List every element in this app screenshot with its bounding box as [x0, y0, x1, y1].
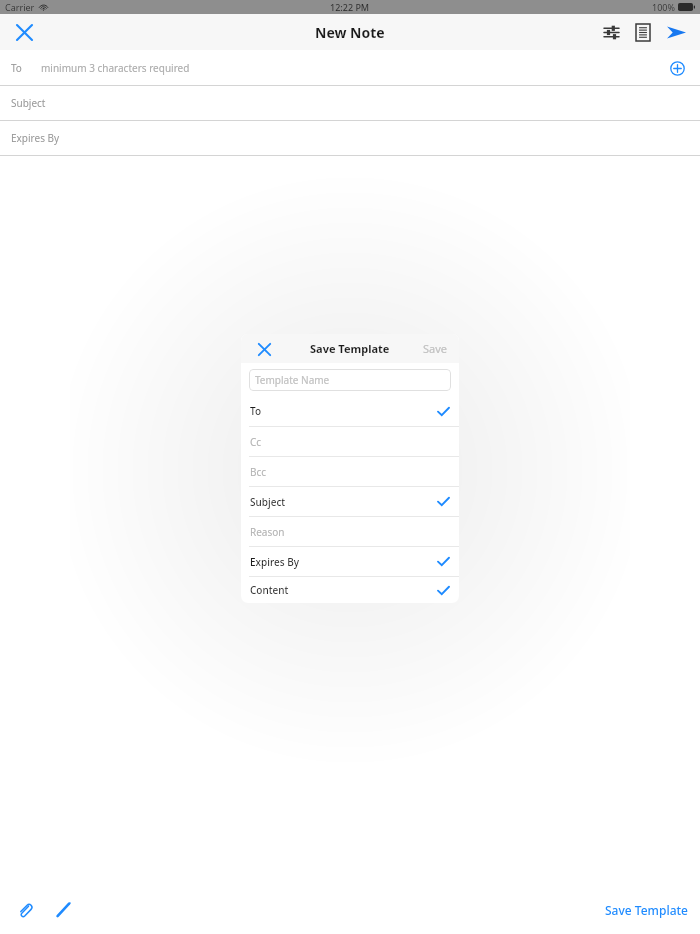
staticText: Expires By — [250, 555, 299, 569]
button[interactable]: Expires By — [0, 121, 700, 155]
staticText: minimum 3 characters required — [41, 61, 190, 75]
button[interactable]: Save Template — [599, 896, 694, 924]
staticText: To — [250, 404, 262, 418]
staticText: To — [11, 61, 22, 75]
button[interactable]: Attach — [10, 895, 40, 925]
staticText: 100% — [652, 1, 675, 13]
staticText: Bcc — [250, 465, 267, 479]
button[interactable]: Subject — [0, 86, 700, 120]
button[interactable]: Save — [423, 341, 448, 356]
staticText: New Note — [315, 23, 385, 42]
button[interactable]: To — [241, 396, 459, 426]
button[interactable]: Expires By — [241, 547, 459, 576]
button[interactable]: Send — [662, 18, 690, 46]
button[interactable]: Templates — [630, 19, 656, 45]
button[interactable]: Content — [241, 577, 459, 603]
button[interactable]: Template Name — [249, 369, 451, 391]
staticText: Cc — [250, 435, 262, 449]
staticText: Save — [423, 341, 448, 356]
button[interactable]: Bcc — [241, 457, 459, 486]
button[interactable]: Close dialog — [253, 338, 275, 360]
staticText: Subject — [11, 96, 46, 110]
staticText: Content — [250, 583, 289, 597]
button[interactable]: Options — [598, 19, 624, 45]
staticText: Save Template — [310, 341, 390, 356]
staticText: Subject — [250, 495, 286, 509]
button[interactable]: Reason — [241, 517, 459, 546]
button[interactable]: Close — [8, 16, 40, 48]
button[interactable]: Add recipient — [664, 55, 690, 81]
button[interactable]: Draw — [48, 895, 78, 925]
button[interactable]: Cc — [241, 427, 459, 456]
button[interactable]: Subject — [241, 487, 459, 516]
staticText: Template Name — [255, 373, 330, 387]
staticText: 12:22 PM — [330, 1, 370, 13]
staticText: Carrier — [5, 1, 35, 13]
staticText: Save Template — [605, 902, 688, 918]
staticText: Expires By — [11, 131, 60, 145]
staticText: Reason — [250, 525, 285, 539]
